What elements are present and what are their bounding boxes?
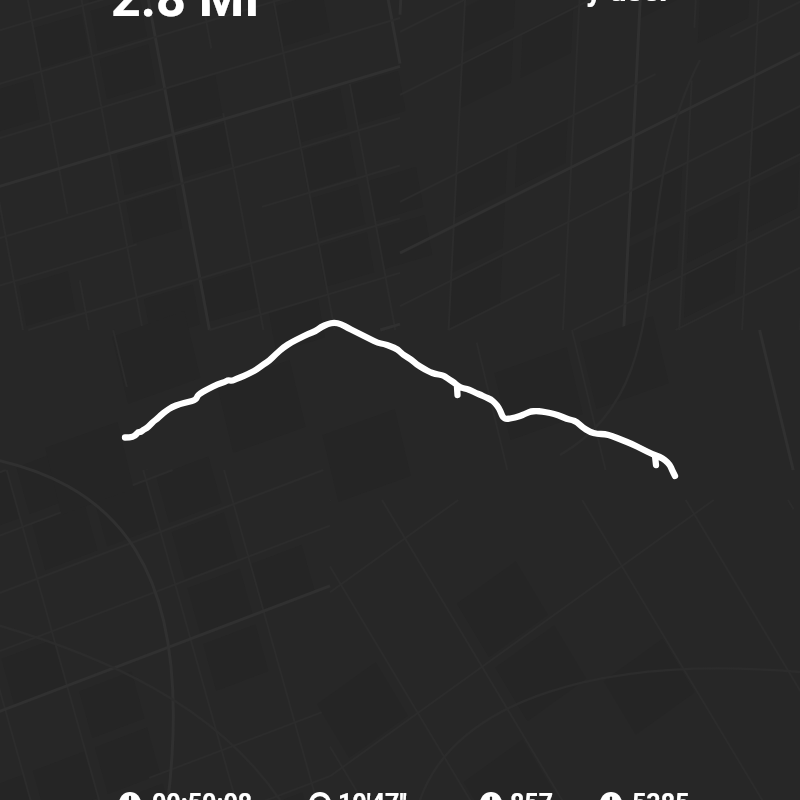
button[interactable]: 5385 steps xyxy=(600,792,680,800)
staticText: 5385 xyxy=(632,789,690,800)
button[interactable]: 857 calories xyxy=(480,792,546,800)
button[interactable]: Route map xyxy=(0,0,800,800)
button[interactable]: Duration 00:50:08 xyxy=(119,792,242,800)
button[interactable]: 2.8 MI xyxy=(111,0,260,29)
staticText: 10'47'' xyxy=(338,789,407,800)
button[interactable]: y user xyxy=(586,0,671,8)
button[interactable]: Average pace 10'47'' xyxy=(309,792,400,800)
staticText: 00:50:08 xyxy=(152,789,253,800)
staticText: 857 xyxy=(510,789,554,800)
